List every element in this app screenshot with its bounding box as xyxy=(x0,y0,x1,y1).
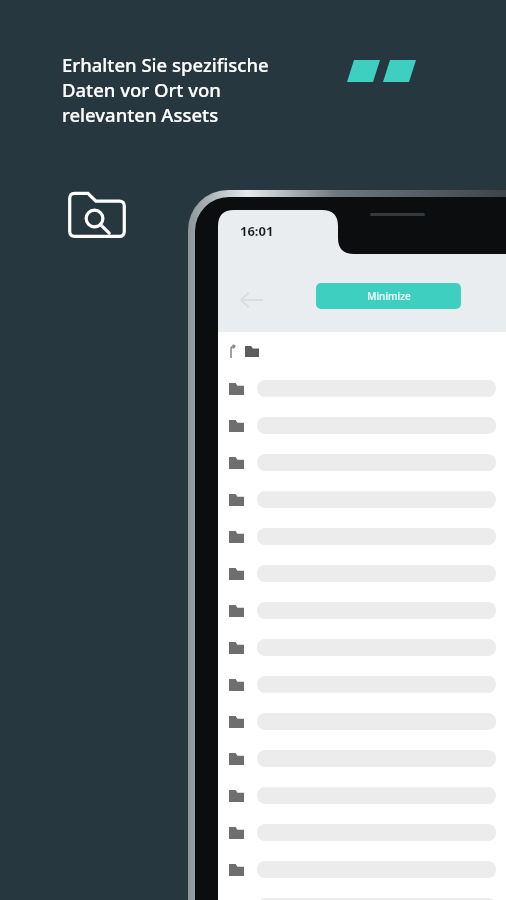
button[interactable] xyxy=(218,481,506,518)
button[interactable] xyxy=(218,851,506,888)
button[interactable] xyxy=(218,592,506,629)
button[interactable] xyxy=(218,777,506,814)
button[interactable]: Search files xyxy=(66,186,128,242)
staticText: Erhalten Sie spezifische xyxy=(62,52,269,77)
button[interactable] xyxy=(218,407,506,444)
button[interactable] xyxy=(218,814,506,851)
button[interactable] xyxy=(218,629,506,666)
staticText: 16:01 xyxy=(240,222,274,240)
button[interactable] xyxy=(218,518,506,555)
button[interactable] xyxy=(218,703,506,740)
button[interactable] xyxy=(218,444,506,481)
staticText: Minimize xyxy=(367,289,411,303)
button[interactable]: Minimize xyxy=(316,283,461,309)
button[interactable] xyxy=(218,740,506,777)
button[interactable] xyxy=(218,666,506,703)
button[interactable] xyxy=(218,888,506,900)
button[interactable]: Back xyxy=(230,280,274,320)
staticText: relevanten Assets xyxy=(62,102,219,127)
button[interactable] xyxy=(228,338,506,364)
button[interactable] xyxy=(218,370,506,407)
staticText: Daten vor Ort von xyxy=(62,77,221,102)
button[interactable] xyxy=(218,555,506,592)
